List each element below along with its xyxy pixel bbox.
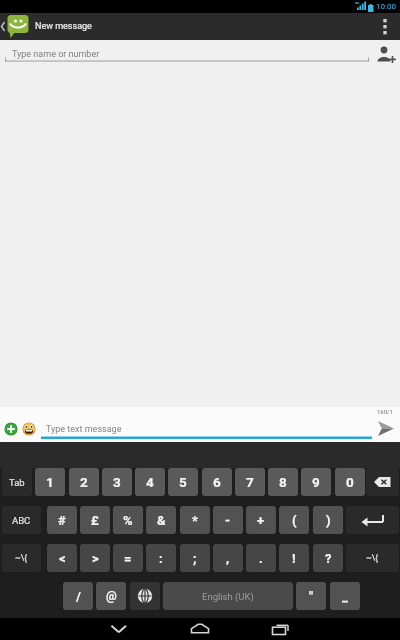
- button[interactable]: 6: [202, 468, 232, 496]
- button[interactable]: [370, 13, 400, 40]
- button[interactable]: *: [180, 506, 210, 534]
- staticText: ": [309, 589, 314, 604]
- button[interactable]: _: [330, 582, 360, 610]
- staticText: 5: [179, 474, 187, 490]
- button[interactable]: ~\{: [2, 544, 41, 572]
- button[interactable]: [184, 618, 216, 640]
- staticText: ): [326, 513, 331, 528]
- staticText: ABC: [12, 515, 31, 526]
- button[interactable]: ": [296, 582, 326, 610]
- staticText: 160/1: [377, 408, 393, 415]
- button[interactable]: [372, 415, 400, 445]
- button[interactable]: !: [279, 544, 309, 572]
- button[interactable]: Tab: [2, 468, 32, 496]
- staticText: New message: [35, 21, 92, 32]
- staticText: @: [106, 589, 117, 603]
- button[interactable]: ~\{: [346, 544, 399, 572]
- button[interactable]: 4: [135, 468, 165, 496]
- staticText: _: [342, 589, 348, 604]
- button[interactable]: ;: [180, 544, 210, 572]
- button[interactable]: .: [246, 544, 276, 572]
- button[interactable]: [4, 422, 18, 436]
- button[interactable]: :: [146, 544, 176, 572]
- staticText: >: [92, 551, 99, 566]
- staticText: -: [225, 513, 231, 528]
- staticText: 4: [146, 474, 154, 490]
- button[interactable]: ABC: [2, 506, 41, 534]
- button[interactable]: <: [47, 544, 77, 572]
- staticText: ~\{: [15, 553, 28, 563]
- button[interactable]: [22, 422, 36, 436]
- button[interactable]: [366, 468, 399, 496]
- button[interactable]: 8: [268, 468, 298, 496]
- staticText: 9: [312, 474, 320, 490]
- staticText: #: [58, 513, 66, 528]
- button[interactable]: (: [279, 506, 309, 534]
- staticText: 1: [46, 474, 54, 490]
- staticText: 2: [80, 474, 88, 490]
- button[interactable]: New message: [0, 13, 92, 40]
- staticText: English (UK): [202, 591, 254, 602]
- button[interactable]: 2: [69, 468, 99, 496]
- staticText: +: [257, 513, 265, 528]
- button[interactable]: +: [246, 506, 276, 534]
- staticText: 3: [113, 474, 121, 490]
- staticText: (: [292, 513, 297, 528]
- button[interactable]: English (UK): [163, 582, 293, 610]
- button[interactable]: 0: [335, 468, 365, 496]
- staticText: ,: [226, 551, 230, 566]
- button[interactable]: [346, 506, 399, 534]
- staticText: =: [124, 551, 132, 566]
- staticText: ?: [325, 551, 332, 566]
- staticText: :: [159, 551, 163, 566]
- button[interactable]: #: [47, 506, 77, 534]
- staticText: Tab: [9, 477, 25, 488]
- button[interactable]: =: [113, 544, 143, 572]
- staticText: ~\{: [366, 553, 379, 563]
- button[interactable]: [264, 618, 296, 640]
- staticText: !: [292, 551, 296, 566]
- button[interactable]: >: [80, 544, 110, 572]
- button[interactable]: %: [113, 506, 143, 534]
- staticText: Type text message: [46, 424, 122, 435]
- staticText: 8: [279, 474, 287, 490]
- staticText: Type name or number: [12, 49, 100, 60]
- button[interactable]: 1: [35, 468, 65, 496]
- staticText: /: [76, 589, 81, 604]
- staticText: 7: [246, 474, 254, 490]
- staticText: <: [59, 551, 66, 566]
- staticText: £: [91, 513, 99, 528]
- staticText: ;: [193, 551, 197, 566]
- button[interactable]: @: [96, 582, 126, 610]
- button[interactable]: £: [80, 506, 110, 534]
- staticText: %: [123, 513, 133, 528]
- button[interactable]: 3: [102, 468, 132, 496]
- button[interactable]: -: [213, 506, 243, 534]
- button[interactable]: 9: [301, 468, 331, 496]
- button[interactable]: 7: [235, 468, 265, 496]
- button[interactable]: ?: [313, 544, 343, 572]
- button[interactable]: [130, 582, 160, 610]
- button[interactable]: &: [146, 506, 176, 534]
- button[interactable]: ,: [213, 544, 243, 572]
- staticText: 0: [346, 474, 354, 490]
- button[interactable]: [366, 40, 400, 75]
- button[interactable]: ): [313, 506, 343, 534]
- button[interactable]: [40, 415, 372, 441]
- button[interactable]: [103, 618, 135, 640]
- button[interactable]: /: [63, 582, 93, 610]
- button[interactable]: Type name or number: [0, 40, 400, 75]
- staticText: &: [157, 513, 166, 528]
- staticText: 10:00: [376, 2, 396, 11]
- staticText: .: [259, 551, 263, 566]
- button[interactable]: 5: [168, 468, 198, 496]
- staticText: 6: [213, 474, 221, 490]
- staticText: *: [192, 513, 198, 528]
